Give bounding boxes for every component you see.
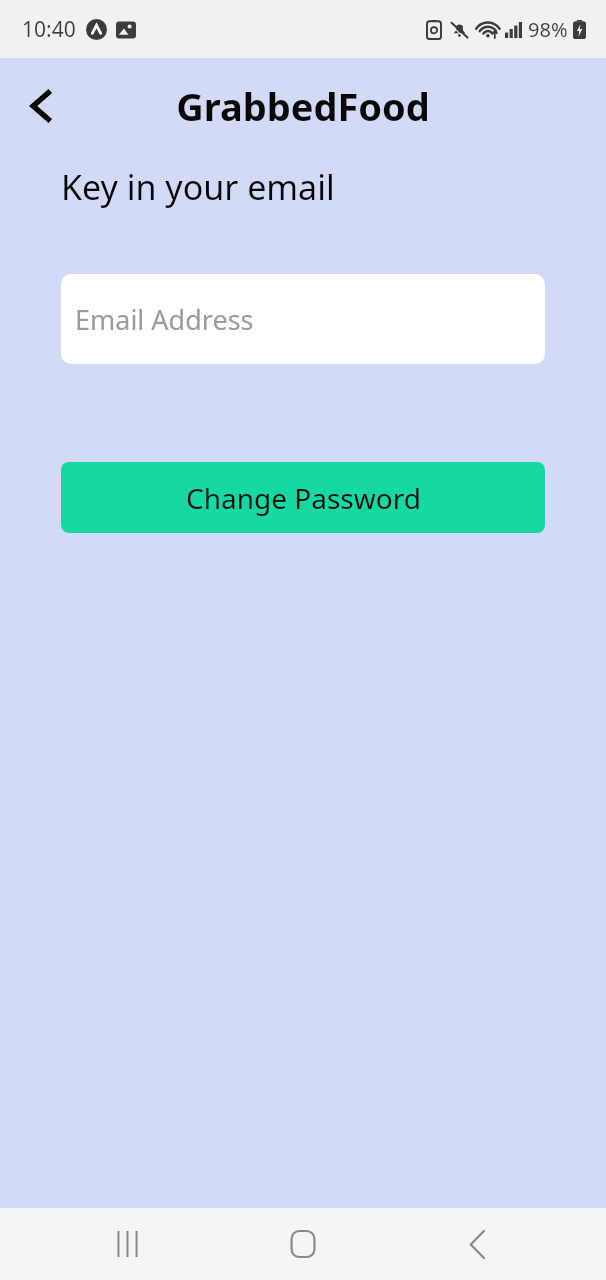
staticText: GrabbedFood <box>176 80 430 132</box>
button[interactable]: Change Password <box>61 462 545 533</box>
staticText: 10:40 <box>22 15 76 44</box>
button[interactable]: Home <box>258 1208 348 1280</box>
staticText: Key in your email <box>61 164 335 210</box>
button[interactable]: Email Address <box>61 274 545 364</box>
button[interactable]: Recents <box>84 1208 174 1280</box>
button[interactable]: Back <box>14 78 70 134</box>
button[interactable]: Back <box>432 1208 522 1280</box>
staticText: 98% <box>528 16 568 43</box>
staticText: Email Address <box>75 301 254 338</box>
staticText: Change Password <box>186 479 421 517</box>
